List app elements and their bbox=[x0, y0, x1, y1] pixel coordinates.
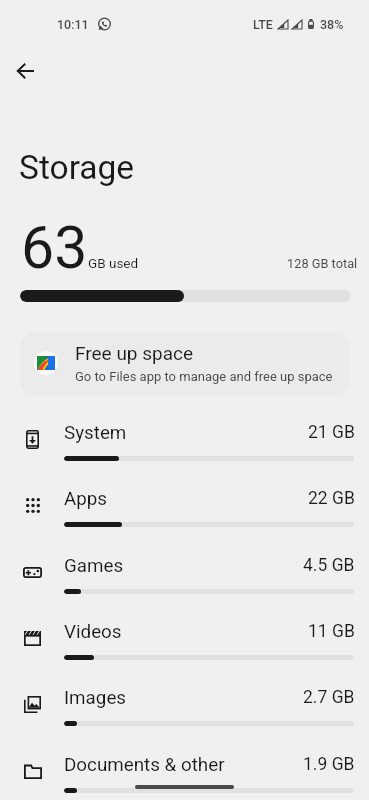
button[interactable]: Free up space bbox=[20, 332, 349, 396]
staticText: 2.7 GB bbox=[303, 687, 355, 708]
staticText: System bbox=[64, 422, 127, 444]
staticText: Games bbox=[64, 555, 124, 577]
staticText: 22 GB bbox=[308, 488, 355, 509]
staticText: 21 GB bbox=[308, 422, 355, 443]
staticText: 4.5 GB bbox=[303, 555, 355, 576]
staticText: Images bbox=[64, 687, 127, 709]
staticText: Documents & other bbox=[64, 754, 225, 776]
button[interactable]: Games bbox=[0, 545, 369, 611]
staticText: 11 GB bbox=[308, 621, 355, 642]
staticText: 63 bbox=[21, 213, 88, 282]
button[interactable]: Apps bbox=[0, 478, 369, 544]
button[interactable]: Documents & other bbox=[0, 744, 369, 800]
staticText: Apps bbox=[64, 488, 108, 510]
button[interactable]: Videos bbox=[0, 611, 369, 677]
staticText: LTE bbox=[253, 17, 273, 32]
button[interactable]: Back bbox=[5, 51, 45, 91]
staticText: Videos bbox=[64, 621, 122, 643]
button[interactable]: System bbox=[0, 412, 369, 478]
button[interactable]: Images bbox=[0, 677, 369, 743]
staticText: GB used bbox=[88, 255, 139, 271]
staticText: 128 GB total bbox=[287, 256, 358, 271]
staticText: Storage bbox=[19, 148, 135, 187]
staticText: 10:11 bbox=[57, 17, 89, 32]
staticText: Go to Files app to manage and free up sp… bbox=[75, 369, 333, 384]
staticText: Free up space bbox=[75, 342, 194, 364]
staticText: 1.9 GB bbox=[303, 754, 355, 775]
staticText: 38% bbox=[320, 17, 344, 32]
